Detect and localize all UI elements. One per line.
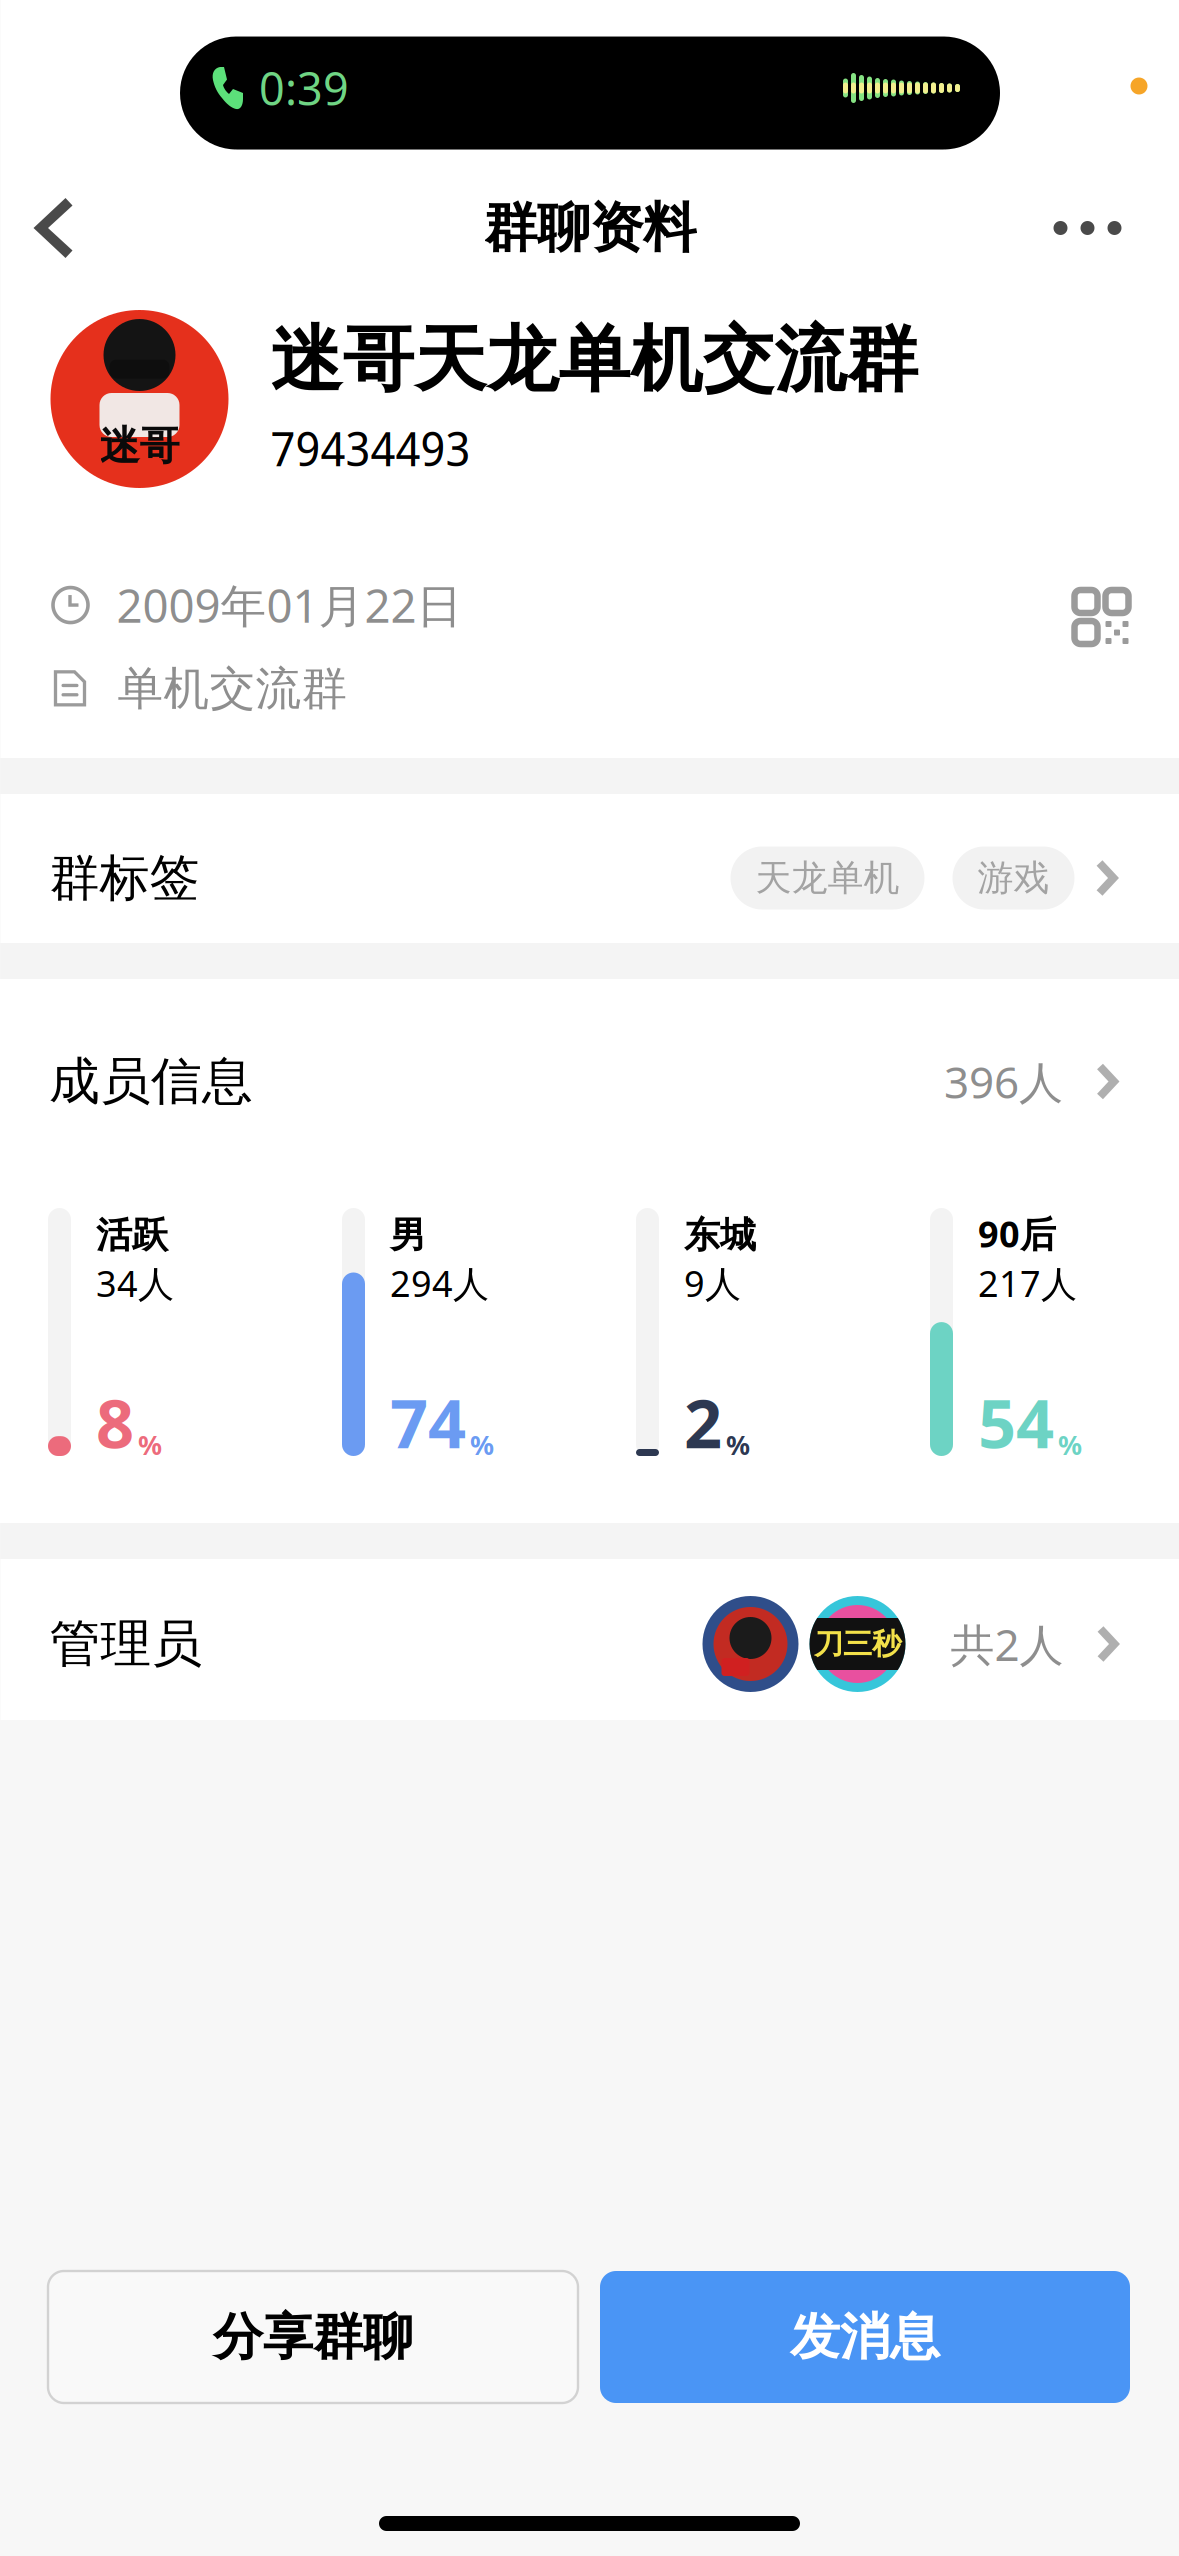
staticText: % [726,1426,750,1463]
button[interactable]: 群标签 [0,794,1179,943]
staticText: 2 [684,1377,722,1468]
staticText: 90后 [978,1209,1056,1258]
staticText: 发消息 [790,2305,940,2368]
staticText: 217人 [978,1258,1077,1307]
staticText: 成员信息 [49,1050,253,1113]
button[interactable]: 分享群聊 [48,2271,578,2403]
staticText: 群标签 [49,846,199,909]
staticText: 游戏 [977,855,1049,901]
staticText: 单机交流群 [117,660,347,717]
staticText: 迷哥 [99,421,179,471]
staticText: % [470,1426,494,1463]
staticText: 294人 [390,1258,489,1307]
button[interactable]: 管理员 [0,1559,1179,1720]
staticText: 0:39 [259,57,349,119]
staticText: 刀三秒 [814,1625,901,1662]
staticText: 2009年01月22日 [116,574,462,636]
staticText: 东城 [684,1213,756,1258]
staticText: 396人 [944,1051,1063,1111]
staticText: 54 [978,1377,1054,1468]
staticText: 男 [390,1213,426,1258]
staticText: 天龙单机 [755,855,899,901]
button[interactable]: More options [1013,179,1179,277]
staticText: 共2人 [950,1614,1063,1674]
button[interactable]: Group QR code [1054,574,1128,664]
button[interactable]: Back [0,176,102,280]
staticText: 8 [96,1377,134,1468]
staticText: 分享群聊 [213,2305,413,2368]
staticText: 迷哥天龙单机交流群 [270,315,918,405]
staticText: % [138,1426,162,1463]
button[interactable]: 成员信息 [0,979,1179,1184]
button[interactable]: 发消息 [600,2271,1130,2403]
staticText: 74 [390,1377,466,1468]
staticText: 34人 [96,1258,174,1307]
staticText: % [1058,1426,1082,1463]
staticText: 群聊资料 [484,194,696,262]
staticText: 管理员 [49,1612,202,1676]
staticText: 活跃 [96,1213,168,1258]
staticText: 9人 [684,1258,741,1307]
staticText: 79434493 [270,416,470,480]
